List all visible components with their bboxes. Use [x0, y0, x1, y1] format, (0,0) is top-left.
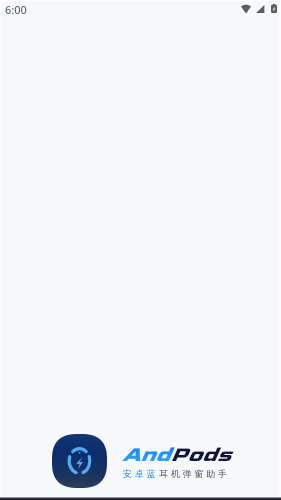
- staticText: 耳机弹窗助手: [159, 468, 230, 479]
- staticText: 安卓蓝: [123, 468, 159, 479]
- staticText: And: [122, 442, 170, 468]
- staticText: 6:00: [5, 2, 27, 17]
- other: AndPods logo: [52, 434, 107, 488]
- staticText: Pods: [170, 442, 231, 468]
